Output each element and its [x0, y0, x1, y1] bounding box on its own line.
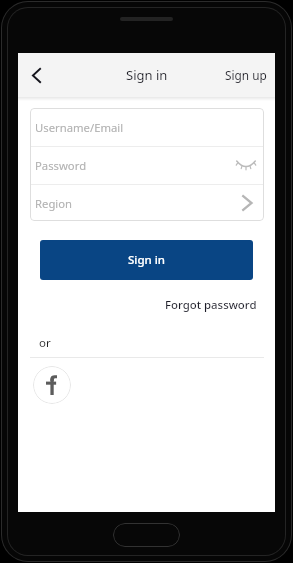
staticText: Sign in [128, 252, 166, 268]
staticText: Sign in [126, 66, 168, 84]
staticText: Password [35, 158, 87, 173]
staticText: or [39, 335, 51, 351]
button[interactable]: Sign in with Facebook [33, 366, 71, 404]
button[interactable]: Region [30, 185, 264, 221]
button[interactable]: Sign up [213, 53, 275, 97]
button[interactable]: Password [30, 147, 264, 184]
button[interactable]: Username/Email [30, 108, 264, 146]
button[interactable]: Back [21, 53, 51, 97]
staticText: Forgot password [165, 297, 257, 313]
staticText: Region [35, 196, 73, 211]
staticText: Sign up [225, 67, 267, 83]
button[interactable]: Sign in [40, 240, 253, 280]
staticText: Username/Email [35, 120, 124, 135]
button[interactable]: Forgot password [165, 297, 257, 313]
